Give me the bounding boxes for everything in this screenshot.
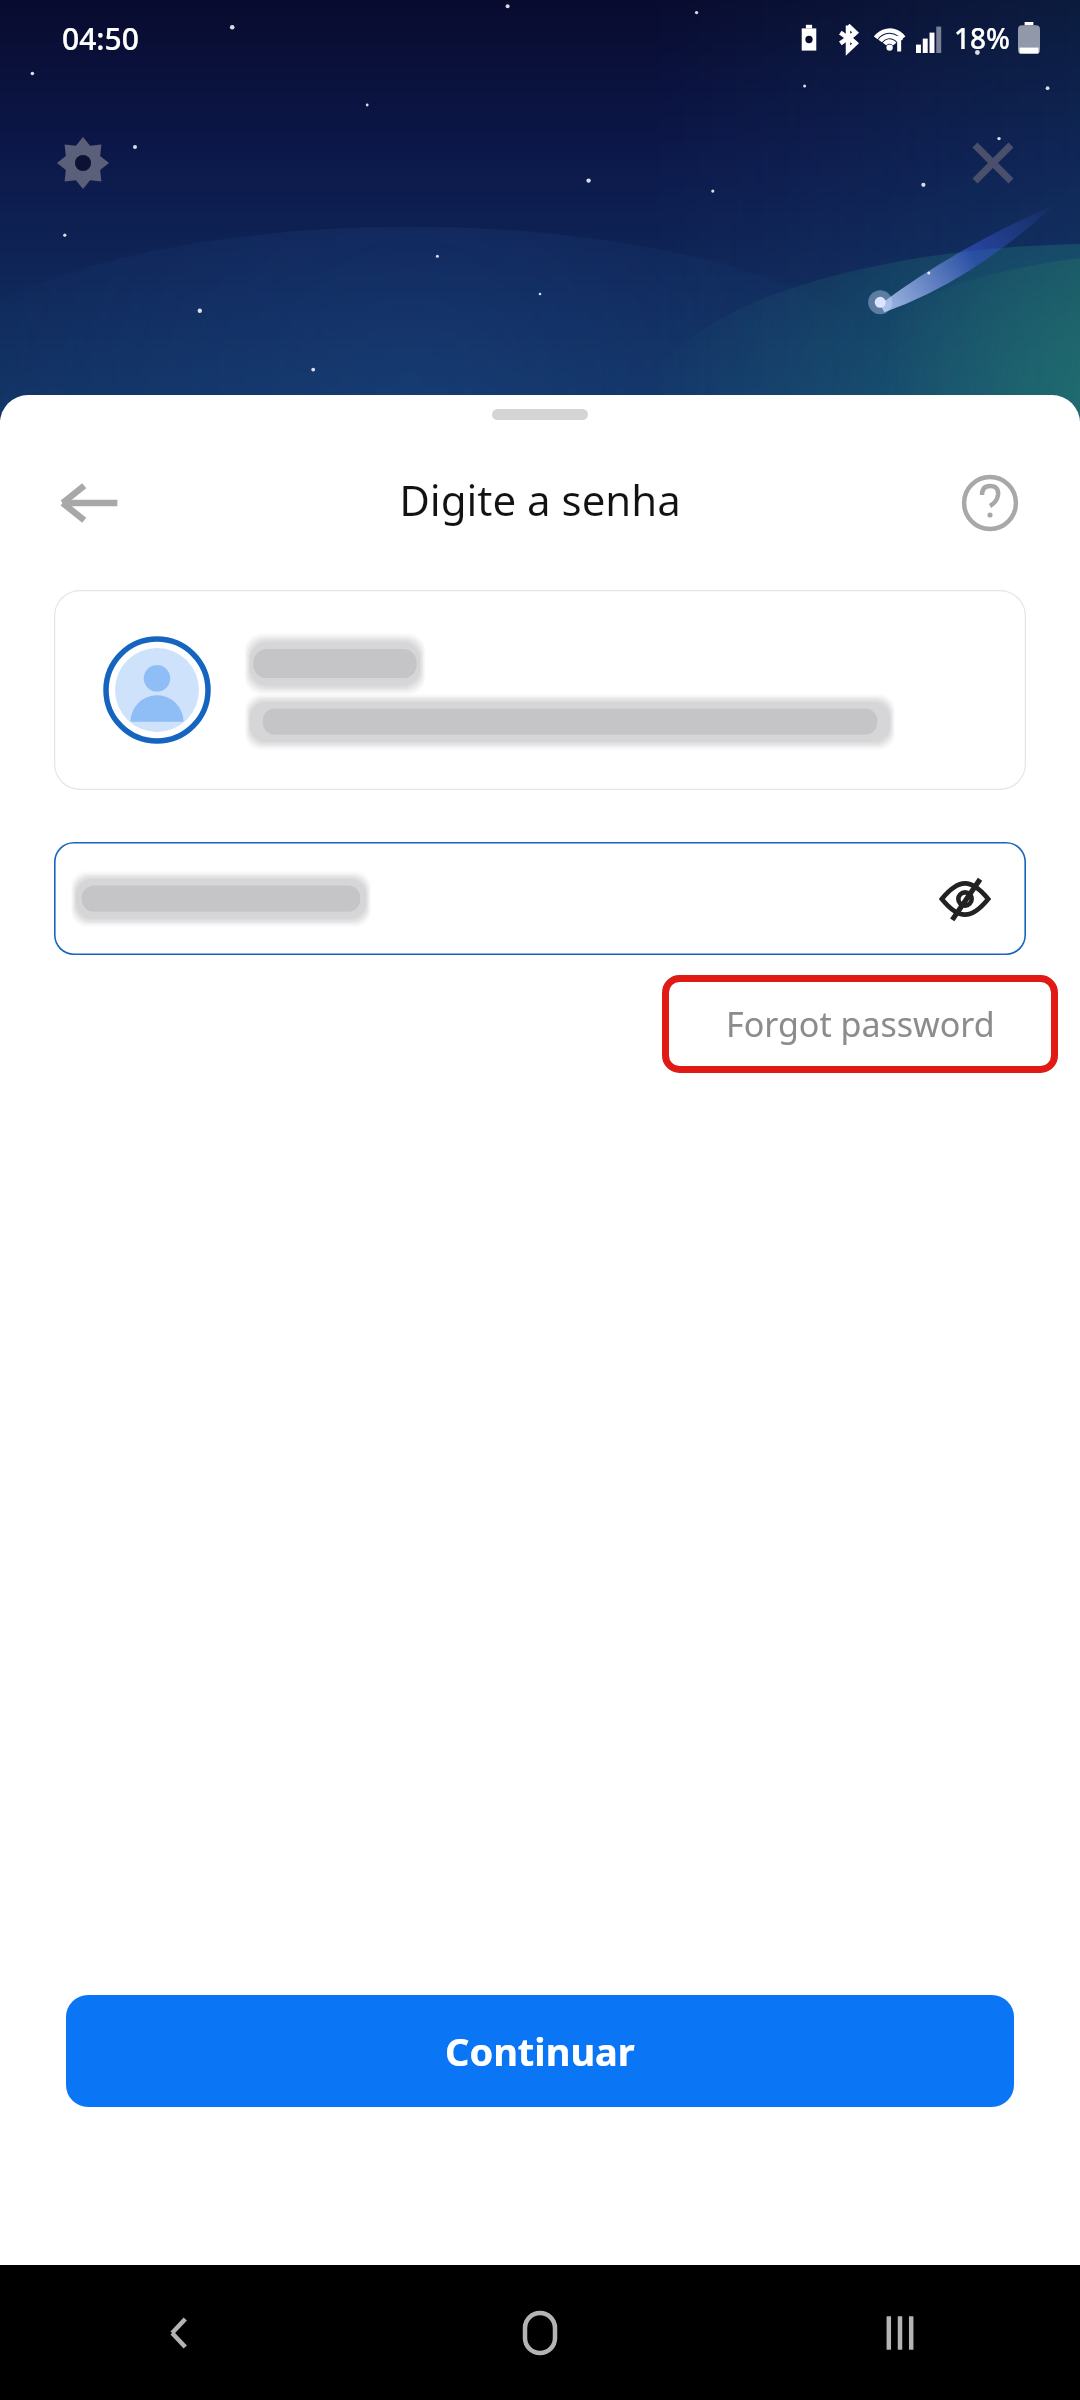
staticText: Digite a senha bbox=[399, 471, 681, 528]
staticText: Forgot password bbox=[726, 1001, 995, 1047]
button[interactable]: Settings bbox=[52, 132, 114, 194]
staticText: 04:50 bbox=[62, 18, 139, 59]
button[interactable]: Back bbox=[54, 467, 126, 539]
button[interactable]: Help bbox=[954, 467, 1026, 539]
button[interactable]: Continuar bbox=[66, 1995, 1014, 2107]
button[interactable]: Close bbox=[962, 132, 1024, 194]
button[interactable] bbox=[54, 590, 1026, 790]
button[interactable]: Show password bbox=[936, 870, 994, 928]
staticText: Continuar bbox=[445, 2025, 635, 2077]
staticText: 18% bbox=[954, 19, 1010, 57]
button[interactable]: Recent apps bbox=[720, 2265, 1080, 2400]
button[interactable]: Show password bbox=[54, 842, 1026, 955]
button[interactable]: Home bbox=[360, 2265, 720, 2400]
button[interactable]: Forgot password bbox=[662, 975, 1058, 1073]
button[interactable]: Back bbox=[0, 2265, 360, 2400]
